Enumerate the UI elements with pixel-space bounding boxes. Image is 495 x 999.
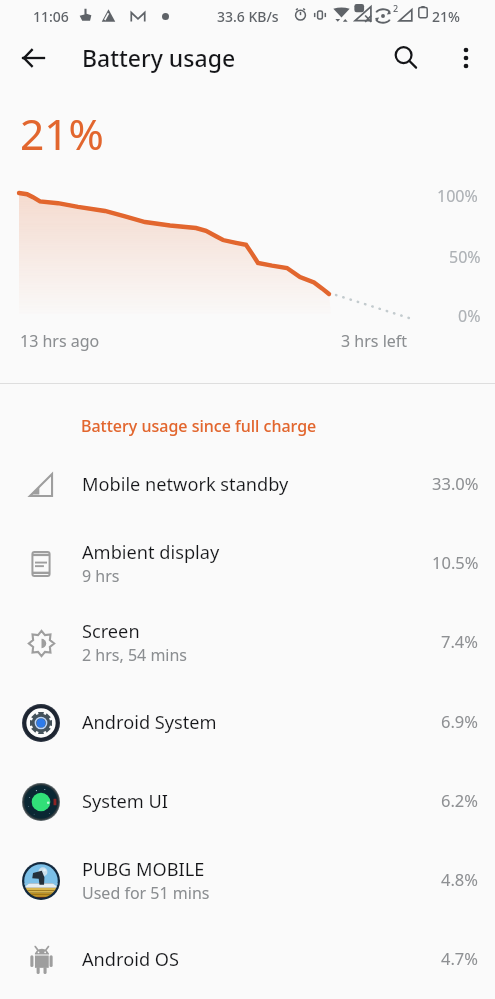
staticText: Screen	[82, 619, 140, 644]
button[interactable]: Search	[382, 34, 430, 82]
staticText: 10.5%	[432, 551, 479, 573]
button[interactable]: System UI	[0, 762, 495, 841]
staticText: System UI	[82, 789, 168, 814]
staticText: 2 hrs, 54 mins	[82, 644, 188, 666]
staticText: Android OS	[82, 947, 179, 972]
staticText: 9 hrs	[82, 565, 120, 587]
staticText: 4.7%	[441, 947, 479, 969]
staticText: PUBG MOBILE	[82, 857, 205, 882]
staticText: Android System	[82, 710, 217, 735]
button[interactable]: Back	[9, 34, 57, 82]
staticText: Battery usage	[82, 42, 236, 73]
staticText: 33.6 KB/s	[217, 7, 279, 26]
staticText: 21%	[20, 105, 104, 163]
staticText: 13 hrs ago	[20, 330, 100, 352]
staticText: Mobile network standby	[82, 472, 289, 497]
staticText: 4.8%	[441, 868, 479, 890]
button[interactable]: Android OS	[0, 920, 495, 999]
button[interactable]: Mobile network standby	[0, 445, 495, 524]
staticText: 100%	[437, 185, 478, 207]
button[interactable]: Android System	[0, 683, 495, 762]
staticText: Battery usage since full charge	[81, 415, 317, 437]
staticText: 50%	[449, 246, 481, 268]
staticText: 11:06	[33, 7, 69, 26]
staticText: 21%	[432, 7, 460, 26]
button[interactable]: More options	[442, 34, 490, 82]
staticText: 7.4%	[441, 630, 479, 652]
button[interactable]: Screen	[0, 603, 495, 682]
button[interactable]: PUBG MOBILE	[0, 841, 495, 920]
staticText: 33.0%	[432, 472, 479, 494]
staticText: Used for 51 mins	[82, 882, 210, 904]
button[interactable]: Ambient display	[0, 524, 495, 603]
staticText: Ambient display	[82, 540, 220, 565]
staticText: 0%	[458, 305, 481, 327]
staticText: 6.9%	[441, 710, 479, 732]
staticText: 2	[393, 2, 399, 14]
staticText: 3 hrs left	[341, 330, 408, 352]
staticText: 6.2%	[441, 789, 479, 811]
